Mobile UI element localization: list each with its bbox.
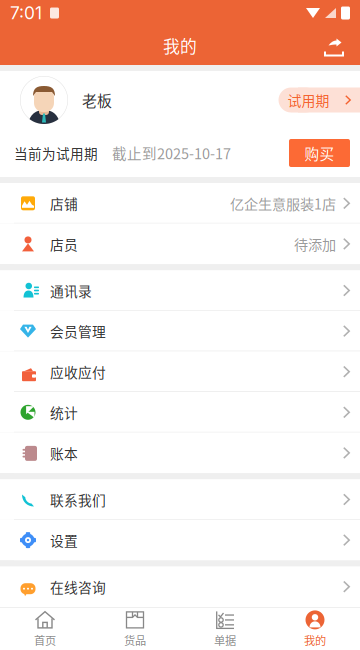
staticText: 通讯录	[50, 281, 92, 300]
staticText: 我的	[163, 33, 197, 58]
staticText: 货品	[124, 632, 146, 648]
staticText: 联系我们	[50, 490, 106, 509]
staticText: 统计	[50, 402, 78, 422]
button[interactable]: 货品	[90, 608, 180, 650]
staticText: 账本	[50, 443, 78, 463]
button[interactable]: Share	[319, 30, 349, 60]
staticText: 在线咨询	[50, 577, 106, 597]
staticText: 会员管理	[50, 321, 106, 341]
staticText: 首页	[34, 632, 56, 648]
staticText: 老板	[82, 89, 112, 111]
button[interactable]: 购买	[289, 139, 350, 167]
staticText: 亿企生意服装1店	[230, 193, 336, 214]
button[interactable]: 会员管理	[0, 311, 360, 351]
button[interactable]: 通讯录	[0, 270, 360, 311]
button[interactable]: 试用期	[278, 87, 360, 112]
button[interactable]: 联系我们	[0, 479, 360, 520]
staticText: 店员	[50, 234, 78, 254]
staticText: 当前为试用期	[14, 143, 98, 163]
button[interactable]: 我的	[270, 608, 360, 650]
staticText: 试用期	[287, 90, 329, 110]
button[interactable]: 首页	[0, 608, 90, 650]
staticText: 我的	[304, 632, 326, 648]
button[interactable]: 单据	[180, 608, 270, 650]
button[interactable]: 应收应付	[0, 351, 360, 392]
button[interactable]: 在线咨询	[0, 566, 360, 607]
staticText: 店铺	[50, 193, 78, 213]
staticText: 单据	[214, 632, 236, 648]
staticText: 截止到2025-10-17	[112, 142, 231, 163]
button[interactable]: 设置	[0, 520, 360, 560]
button[interactable]: 账本	[0, 433, 360, 473]
staticText: 购买	[304, 142, 334, 164]
button[interactable]: 统计	[0, 392, 360, 433]
staticText: 7:01	[10, 2, 42, 23]
staticText: 应收应付	[50, 362, 106, 382]
staticText: 设置	[50, 530, 78, 550]
button[interactable]: 店铺	[0, 183, 360, 224]
staticText: 待添加	[294, 234, 336, 254]
button[interactable]: 店员	[0, 224, 360, 264]
